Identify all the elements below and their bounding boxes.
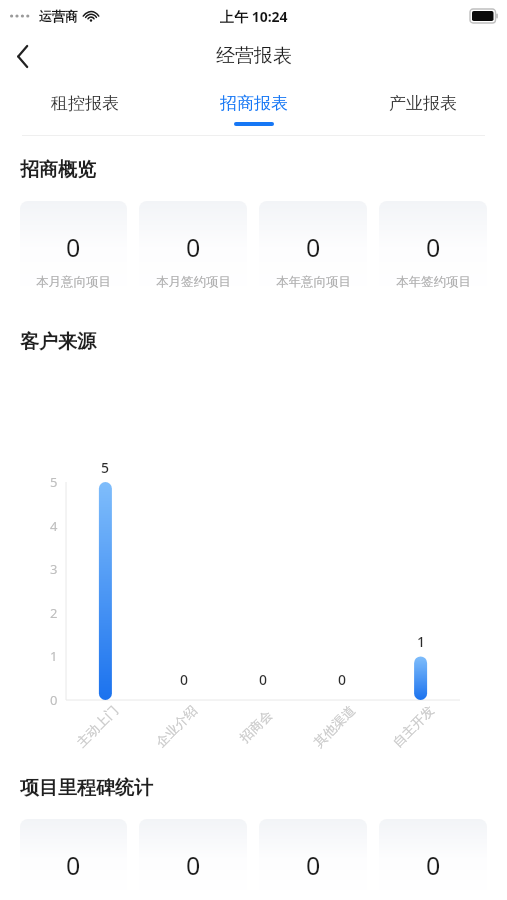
staticText: 租控报表 <box>51 93 119 114</box>
staticText: 0 <box>180 670 189 689</box>
staticText: 0 <box>338 670 347 689</box>
staticText: 客户来源 <box>20 330 96 354</box>
staticText: 0 <box>426 230 441 264</box>
staticText: 4 <box>50 517 58 535</box>
staticText: 本月意向项目 <box>36 274 111 290</box>
staticText: 上午 10:24 <box>220 7 288 26</box>
button[interactable]: 0 <box>379 819 487 900</box>
staticText: 5 <box>101 458 110 477</box>
staticText: 5 <box>50 473 58 491</box>
staticText: 本月签约项目 <box>156 274 231 290</box>
staticText: 0 <box>426 848 441 882</box>
staticText: 0 <box>66 230 81 264</box>
staticText: 招商报表 <box>220 93 288 114</box>
button[interactable]: 0 <box>139 201 247 298</box>
staticText: 产业报表 <box>389 93 457 114</box>
staticText: 1 <box>50 647 58 665</box>
staticText: 0 <box>186 230 201 264</box>
button[interactable]: 0 <box>379 201 487 298</box>
button[interactable]: 0 <box>139 819 247 900</box>
staticText: 0 <box>50 691 58 709</box>
staticText: 项目里程碑统计 <box>20 776 153 800</box>
staticText: 自主开发 <box>389 702 437 750</box>
staticText: 招商会 <box>236 707 275 745</box>
button[interactable]: 0 <box>20 819 127 900</box>
staticText: 其他渠道 <box>310 702 358 750</box>
button[interactable]: 租控报表 <box>0 80 169 136</box>
button[interactable]: Back <box>0 33 46 79</box>
staticText: 主动上门 <box>73 702 121 750</box>
staticText: 0 <box>306 230 321 264</box>
staticText: 经营报表 <box>216 44 292 68</box>
staticText: 招商概览 <box>20 158 96 182</box>
staticText: 企业介绍 <box>152 702 200 750</box>
staticText: 3 <box>50 560 58 578</box>
staticText: 本年意向项目 <box>276 274 351 290</box>
staticText: 0 <box>306 848 321 882</box>
staticText: 1 <box>417 632 426 651</box>
staticText: 0 <box>186 848 201 882</box>
button[interactable]: 产业报表 <box>338 80 507 136</box>
button[interactable]: 招商报表 <box>169 80 338 136</box>
staticText: 0 <box>66 848 81 882</box>
staticText: 运营商 <box>39 8 78 24</box>
button[interactable]: 0 <box>259 201 367 298</box>
button[interactable]: 0 <box>20 201 127 298</box>
staticText: 2 <box>50 604 58 622</box>
staticText: 本年签约项目 <box>396 274 471 290</box>
button[interactable]: 0 <box>259 819 367 900</box>
staticText: 0 <box>259 670 268 689</box>
